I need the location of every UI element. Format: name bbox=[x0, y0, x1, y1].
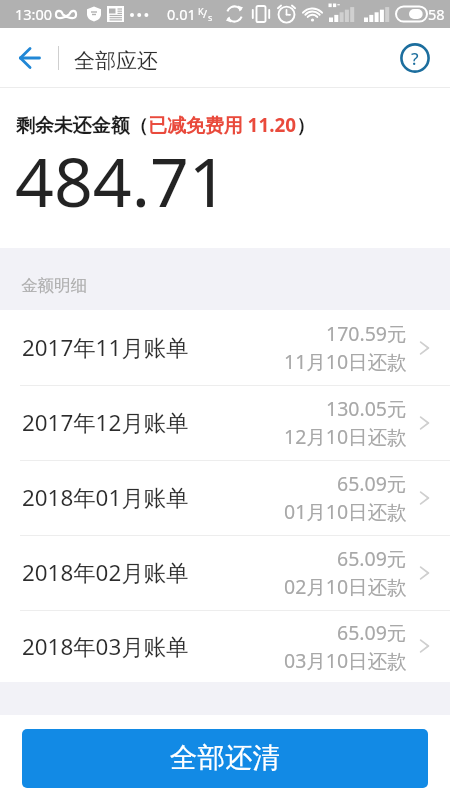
staticText: 03月10日还款 bbox=[284, 647, 407, 674]
staticText: 484.71 bbox=[15, 134, 228, 227]
button[interactable]: Back bbox=[0, 28, 58, 88]
staticText: 65.09元 bbox=[337, 470, 407, 497]
staticText: 170.59元 bbox=[326, 320, 407, 347]
staticText: 02月10日还款 bbox=[284, 573, 407, 600]
staticText: 12月10日还款 bbox=[284, 423, 407, 450]
staticText: 2018年02月账单 bbox=[22, 557, 189, 588]
staticText: 2017年12月账单 bbox=[22, 407, 189, 438]
staticText: 65.09元 bbox=[337, 619, 407, 646]
staticText: 130.05元 bbox=[326, 395, 407, 422]
button[interactable]: 2017年11月账单 bbox=[0, 310, 450, 385]
staticText: 剩余未还金额（已减免费用 11.20） bbox=[16, 112, 316, 138]
staticText: / bbox=[203, 6, 208, 21]
button[interactable]: 全部还清 bbox=[22, 729, 428, 788]
staticText: s bbox=[208, 11, 213, 23]
button[interactable]: 2018年02月账单 bbox=[0, 535, 450, 610]
staticText: 11月10日还款 bbox=[284, 348, 407, 375]
button[interactable]: 2017年12月账单 bbox=[0, 385, 450, 460]
button[interactable]: Help bbox=[392, 28, 447, 88]
staticText: 01月10日还款 bbox=[284, 498, 407, 525]
button[interactable]: 2018年01月账单 bbox=[0, 460, 450, 535]
staticText: 13:00 bbox=[15, 4, 53, 24]
staticText: 金额明细 bbox=[21, 275, 87, 296]
button[interactable]: 2018年03月账单 bbox=[0, 610, 450, 682]
staticText: 2018年01月账单 bbox=[22, 482, 189, 513]
staticText: K bbox=[198, 5, 204, 17]
staticText: ? bbox=[411, 47, 419, 70]
staticText: 58 bbox=[428, 4, 445, 24]
staticText: 全部还清 bbox=[170, 741, 280, 776]
staticText: 0.01 bbox=[167, 4, 196, 24]
staticText: 2017年11月账单 bbox=[22, 332, 189, 363]
staticText: 全部应还 bbox=[74, 48, 158, 74]
staticText: 2018年03月账单 bbox=[22, 631, 189, 662]
staticText: 65.09元 bbox=[337, 545, 407, 572]
